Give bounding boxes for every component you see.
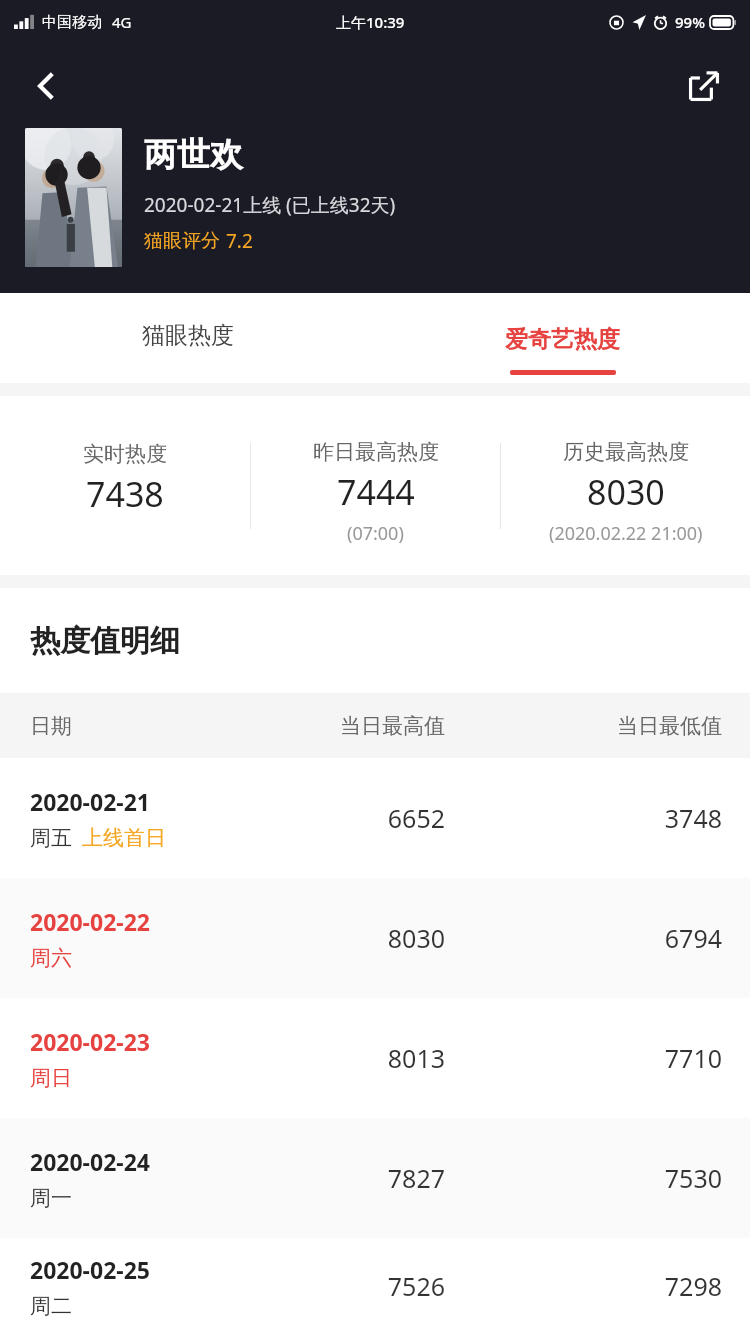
staticText: 爱奇艺热度 [505,325,620,354]
staticText: 2020-02-21上线 (已上线32天) [144,192,396,218]
staticText: 7530 [545,1161,722,1195]
staticText: 6794 [545,921,722,955]
staticText: 7.2 [226,228,253,254]
staticText: 4G [112,12,132,32]
staticText: 7526 [268,1269,445,1303]
staticText: 两世欢 [144,134,243,176]
staticText: 当日最高值 [268,713,445,739]
staticText: 7444 [337,469,415,515]
staticText: 2020-02-22 [30,906,150,937]
staticText: 猫眼热度 [142,321,234,350]
staticText: 热度值明细 [30,622,180,660]
button[interactable]: 2020-02-25 [0,1238,750,1334]
staticText: 2020-02-24 [30,1146,150,1177]
staticText: 周一 [30,1185,72,1211]
staticText: 历史最高热度 [563,439,689,465]
staticText: 猫眼评分 [144,229,220,253]
button[interactable]: 2020-02-23 [0,998,750,1118]
staticText: 日期 [30,713,268,739]
staticText: 周二 [30,1293,72,1319]
button[interactable]: 2020-02-21 [0,758,750,878]
staticText: 昨日最高热度 [313,439,439,465]
staticText: 6652 [268,801,445,835]
staticText: 2020-02-23 [30,1026,150,1057]
staticText: 8030 [268,921,445,955]
staticText: 中国移动 [42,13,102,32]
button[interactable]: Back [20,60,72,112]
staticText: 上午10:39 [336,12,405,32]
button[interactable]: Share [678,60,730,112]
staticText: 周日 [30,1065,72,1091]
staticText: (2020.02.22 21:00) [549,521,703,546]
button[interactable]: 猫眼热度 [0,293,375,383]
staticText: 7298 [545,1269,722,1303]
staticText: 99% [675,12,705,32]
staticText: 8030 [587,469,665,515]
staticText: 2020-02-25 [30,1254,150,1285]
staticText: 周六 [30,945,72,971]
staticText: 7438 [86,471,164,517]
staticText: (07:00) [347,521,404,546]
staticText: 7710 [545,1041,722,1075]
staticText: 周五 [30,825,72,851]
staticText: 当日最低值 [545,713,722,739]
staticText: 2020-02-21 [30,786,150,817]
button[interactable]: 2020-02-22 [0,878,750,998]
button[interactable]: 2020-02-24 [0,1118,750,1238]
staticText: 8013 [268,1041,445,1075]
staticText: 7827 [268,1161,445,1195]
staticText: 上线首日 [82,825,166,851]
staticText: 3748 [545,801,722,835]
button[interactable]: 爱奇艺热度 [375,293,750,383]
staticText: 实时热度 [83,441,167,467]
